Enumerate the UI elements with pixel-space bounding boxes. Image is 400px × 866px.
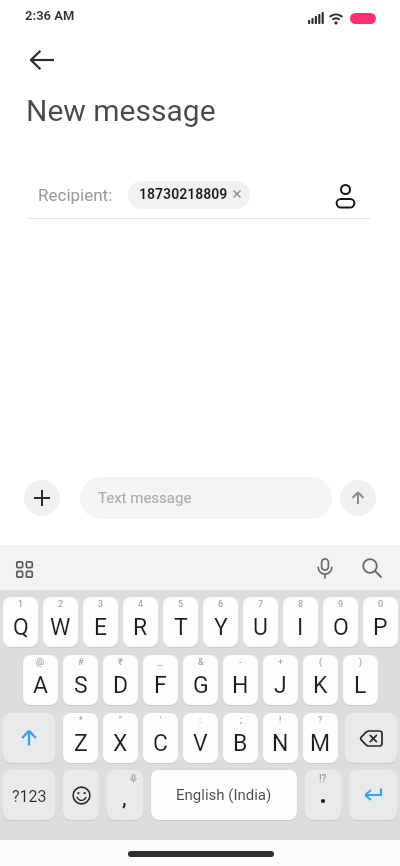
staticText: Y (214, 614, 228, 641)
button[interactable]: 0 (363, 597, 398, 647)
button[interactable] (354, 550, 390, 586)
button[interactable]: ! (263, 713, 298, 763)
staticText: 2 (58, 599, 64, 610)
button[interactable]: 9 (323, 597, 358, 647)
staticText: 0 (378, 599, 384, 610)
button[interactable]: : (183, 713, 218, 763)
staticText: K (313, 672, 328, 699)
button[interactable]: 2 (43, 597, 78, 647)
button[interactable]: Text message (80, 477, 332, 519)
staticText: M (310, 730, 331, 757)
staticText: 5 (178, 599, 184, 610)
button[interactable]: @ (23, 655, 58, 705)
button[interactable]: # (63, 655, 98, 705)
button[interactable]: & (183, 655, 218, 705)
button[interactable] (24, 480, 60, 516)
staticText: & (198, 657, 204, 668)
staticText: B (233, 730, 248, 757)
staticText: _ (158, 657, 163, 668)
staticText: 7 (258, 599, 264, 610)
staticText: Z (74, 730, 88, 757)
staticText: Text message (98, 489, 192, 507)
staticText: J (274, 672, 287, 699)
staticText: F (154, 672, 167, 699)
staticText: S (74, 672, 88, 699)
button[interactable]: ?123 (3, 770, 55, 820)
staticText: ?123 (12, 787, 47, 806)
staticText: , (122, 786, 127, 811)
staticText: O (333, 614, 349, 641)
staticText: * (79, 715, 83, 726)
staticText: ! (279, 715, 282, 726)
button[interactable] (349, 770, 397, 820)
button[interactable]: + (263, 655, 298, 705)
button[interactable]: * (63, 713, 98, 763)
staticText: English (India) (176, 786, 272, 804)
staticText: 6 (218, 599, 224, 610)
button[interactable] (63, 770, 99, 820)
staticText: 2:36 AM (25, 8, 75, 23)
button[interactable] (308, 550, 342, 586)
button[interactable] (345, 713, 397, 763)
staticText: G (193, 672, 209, 699)
staticText: @ (36, 657, 45, 668)
button[interactable]: ? (303, 713, 338, 763)
staticText: 18730218809 (139, 186, 228, 202)
staticText: U (253, 614, 268, 641)
button[interactable] (340, 480, 376, 516)
button[interactable]: 6 (203, 597, 238, 647)
staticText: New message (26, 93, 216, 128)
staticText: C (153, 730, 168, 757)
button[interactable]: !? (305, 770, 341, 820)
button[interactable]: " (103, 713, 138, 763)
button[interactable]: 3 (83, 597, 118, 647)
staticText: T (174, 614, 188, 641)
button[interactable] (20, 40, 64, 80)
staticText: X (113, 730, 128, 757)
button[interactable]: ; (223, 713, 258, 763)
staticText: !? (319, 773, 327, 785)
staticText: V (193, 730, 208, 757)
staticText: ) (359, 657, 363, 668)
staticText: 8 (298, 599, 304, 610)
button[interactable]: ₹ (103, 655, 138, 705)
staticText: 1 (18, 599, 24, 610)
button[interactable] (3, 713, 55, 763)
button[interactable]: 18730218809 (128, 181, 250, 209)
button[interactable]: , (107, 770, 143, 820)
staticText: ? (318, 715, 323, 726)
staticText: ; (240, 715, 242, 726)
button[interactable]: _ (143, 655, 178, 705)
button[interactable] (6, 552, 44, 586)
button[interactable]: 1 (3, 597, 38, 647)
button[interactable]: ) (343, 655, 378, 705)
staticText: I (297, 614, 304, 641)
staticText: Q (13, 614, 29, 641)
staticText: 3 (98, 599, 104, 610)
staticText: ' (160, 715, 162, 726)
staticText: D (113, 672, 129, 699)
button[interactable]: ( (303, 655, 338, 705)
staticText: H (232, 672, 249, 699)
button[interactable]: English (India) (151, 770, 297, 820)
staticText: 9 (338, 599, 344, 610)
button[interactable] (326, 178, 364, 214)
staticText: ₹ (118, 657, 123, 668)
staticText: R (133, 614, 148, 641)
button[interactable]: - (223, 655, 258, 705)
staticText: " (119, 715, 122, 726)
button[interactable]: 5 (163, 597, 198, 647)
staticText: N (272, 730, 289, 757)
staticText: P (373, 614, 388, 641)
staticText: ( (319, 657, 323, 668)
staticText: 4 (138, 599, 144, 610)
staticText: E (94, 614, 108, 641)
staticText: W (50, 614, 71, 641)
button[interactable]: 4 (123, 597, 158, 647)
button[interactable]: 7 (243, 597, 278, 647)
staticText: : (199, 715, 202, 726)
button[interactable]: 8 (283, 597, 318, 647)
staticText: - (239, 657, 242, 668)
button[interactable]: ' (143, 713, 178, 763)
staticText: # (78, 657, 84, 668)
